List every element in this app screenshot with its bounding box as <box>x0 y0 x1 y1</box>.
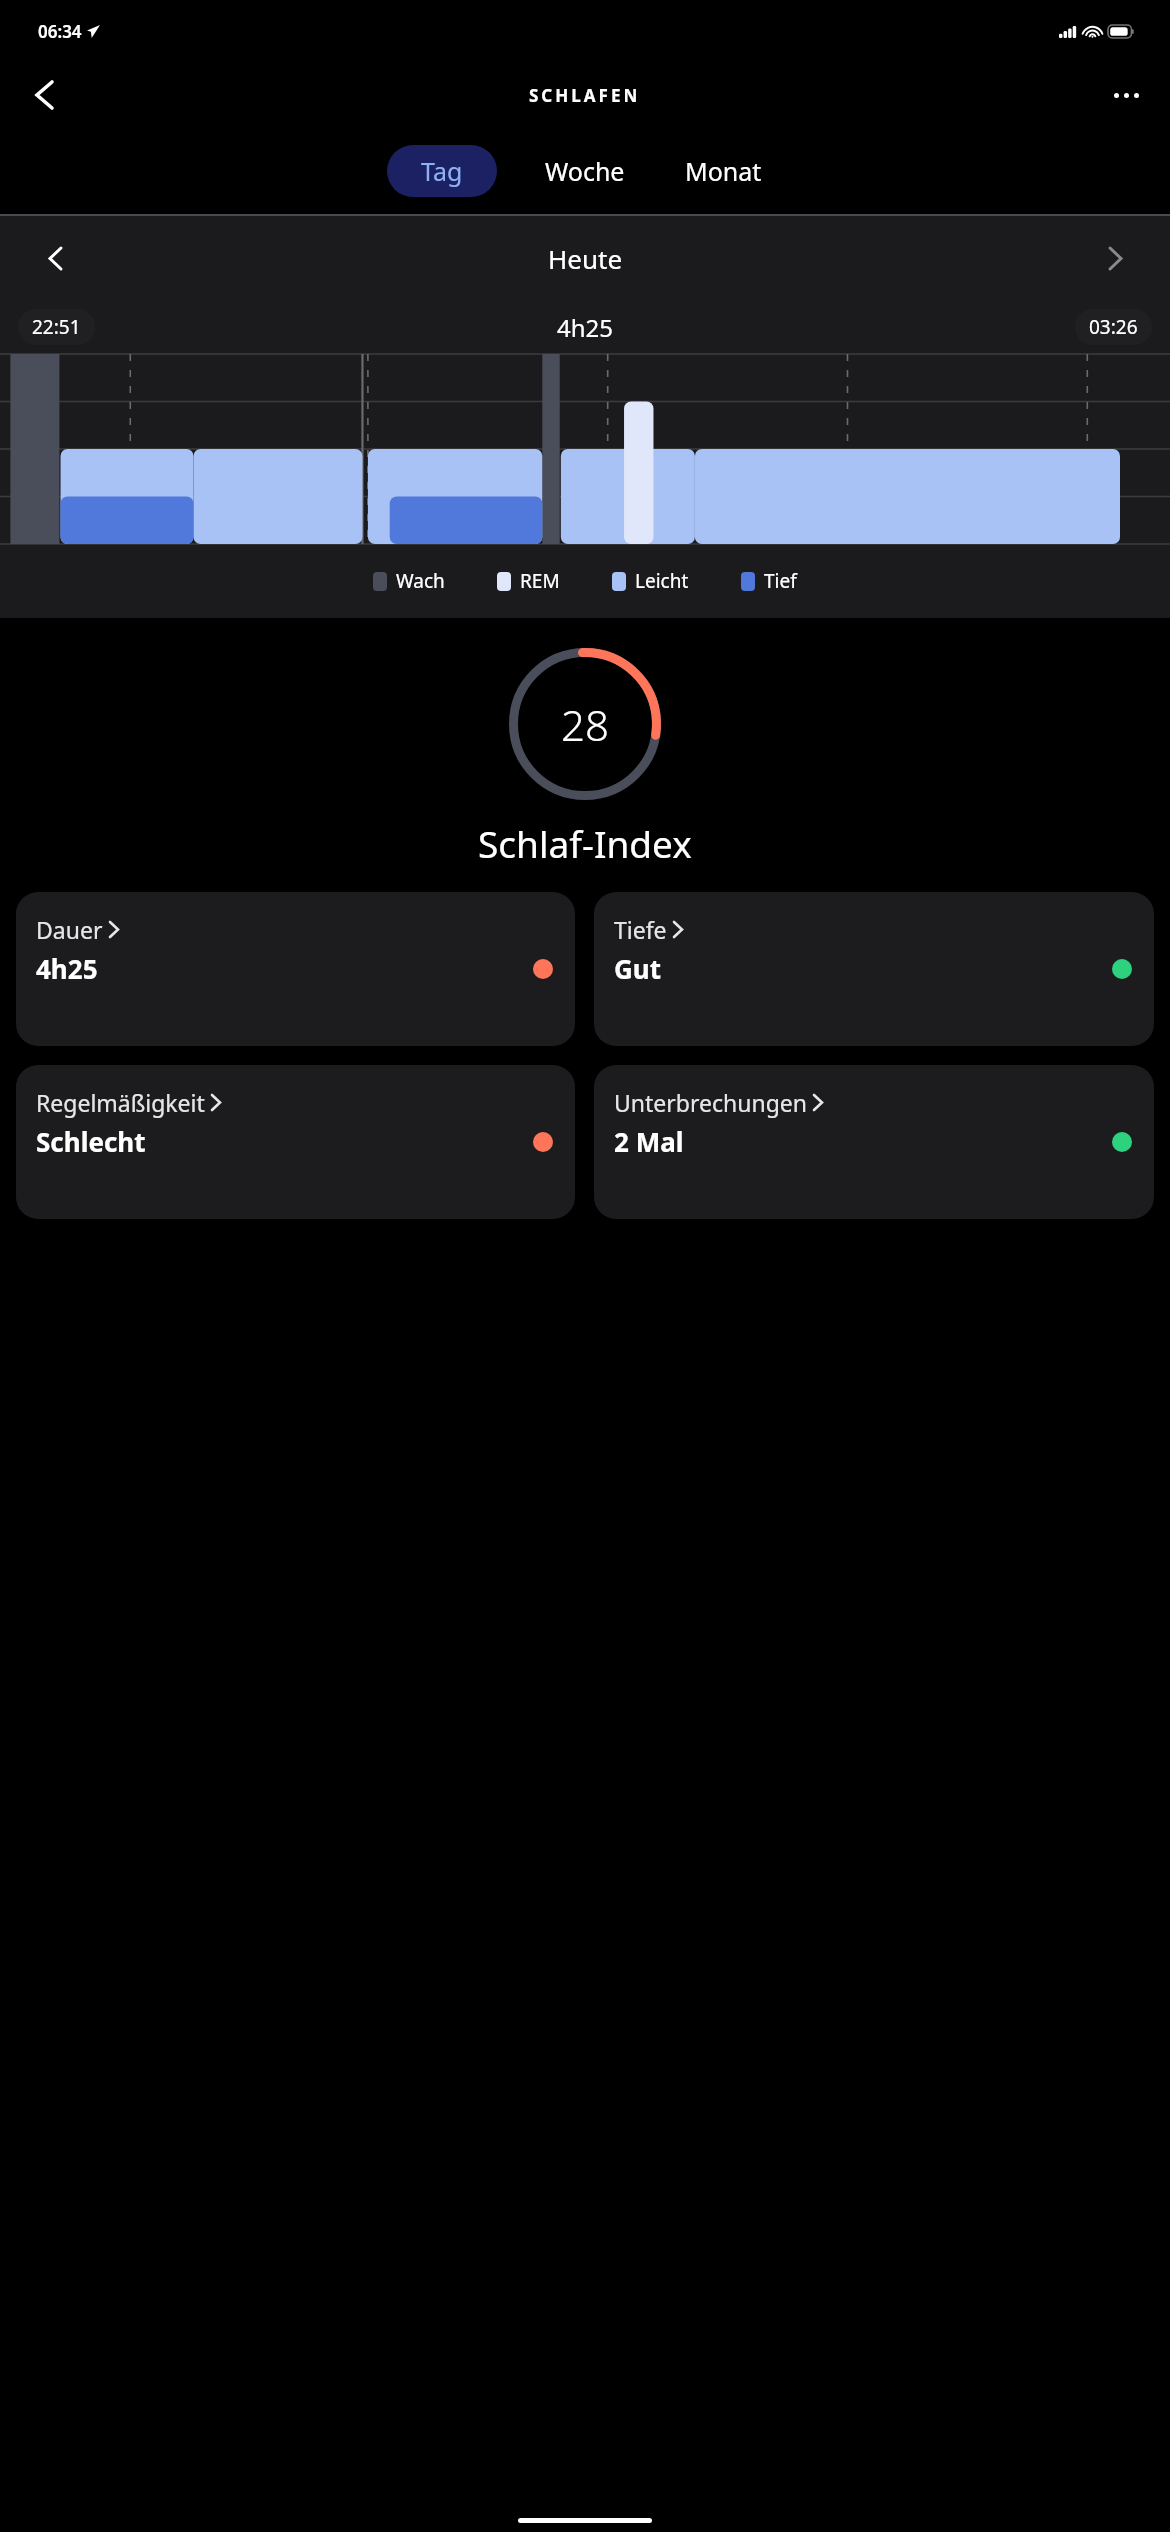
button[interactable]: More options <box>1098 67 1154 123</box>
staticText: SCHLAFEN <box>529 84 641 107</box>
staticText: Woche <box>545 154 625 188</box>
button[interactable]: Tiefe <box>594 892 1154 1046</box>
staticText: Wach <box>396 568 445 594</box>
button[interactable]: Tag <box>387 145 497 197</box>
button[interactable]: Woche <box>523 145 647 197</box>
button[interactable]: Unterbrechungen <box>594 1065 1154 1219</box>
staticText: Schlecht <box>36 1124 146 1159</box>
staticText: 28 <box>561 696 609 753</box>
button[interactable]: Back <box>16 67 72 123</box>
staticText: Leicht <box>635 568 689 594</box>
staticText: Tiefe <box>614 914 667 945</box>
staticText: Heute <box>548 241 623 276</box>
button[interactable]: Regelmäßigkeit <box>16 1065 575 1219</box>
staticText: Unterbrechungen <box>614 1087 807 1118</box>
staticText: Regelmäßigkeit <box>36 1087 205 1118</box>
staticText: 03:26 <box>1089 314 1138 340</box>
staticText: Dauer <box>36 914 103 945</box>
staticText: Monat <box>685 154 762 188</box>
button[interactable]: Monat <box>663 145 784 197</box>
staticText: 2 Mal <box>614 1124 684 1159</box>
button[interactable]: Next day <box>1090 233 1140 283</box>
button[interactable]: Previous day <box>30 233 80 283</box>
staticText: 06:34 <box>38 20 82 43</box>
button[interactable]: Dauer <box>16 892 575 1046</box>
staticText: REM <box>520 568 560 594</box>
staticText: Tag <box>421 154 463 188</box>
staticText: 4h25 <box>36 951 98 986</box>
staticText: 22:51 <box>32 314 81 340</box>
staticText: 4h25 <box>557 311 614 344</box>
staticText: Schlaf-Index <box>478 818 692 868</box>
staticText: Tief <box>764 568 797 594</box>
staticText: Gut <box>614 951 662 986</box>
